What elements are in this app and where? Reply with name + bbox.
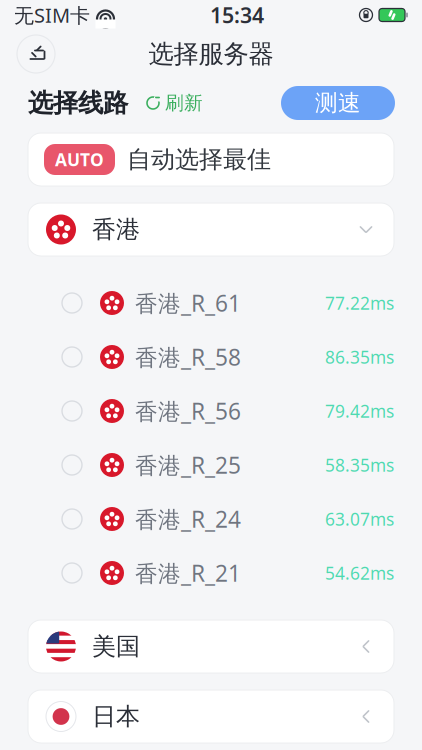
- staticText: 香港: [92, 215, 140, 244]
- button[interactable]: AUTO: [28, 133, 394, 186]
- staticText: 日本: [92, 702, 140, 731]
- button[interactable]: 香港: [28, 203, 394, 256]
- button[interactable]: 香港_R_56: [0, 384, 422, 438]
- staticText: 香港_R_61: [135, 288, 241, 318]
- staticText: 测速: [315, 89, 361, 117]
- button[interactable]: 香港_R_24: [0, 492, 422, 546]
- button[interactable]: 日本: [28, 690, 394, 743]
- button[interactable]: 香港_R_58: [0, 330, 422, 384]
- staticText: 77.22ms: [325, 291, 394, 314]
- button[interactable]: 美国: [28, 620, 394, 673]
- staticText: 选择线路: [28, 87, 128, 118]
- staticText: 54.62ms: [325, 561, 394, 584]
- button[interactable]: 刷新: [140, 85, 209, 120]
- staticText: 58.35ms: [325, 453, 394, 476]
- staticText: 15:34: [210, 1, 264, 29]
- button[interactable]: 香港_R_61: [0, 276, 422, 330]
- staticText: 无SIM卡: [14, 2, 90, 28]
- staticText: 香港_R_58: [135, 342, 241, 372]
- button[interactable]: 返回: [14, 32, 58, 76]
- staticText: AUTO: [55, 148, 104, 171]
- staticText: 香港_R_56: [135, 396, 241, 426]
- button[interactable]: 香港_R_25: [0, 438, 422, 492]
- staticText: 香港_R_24: [135, 504, 241, 534]
- staticText: 香港_R_21: [135, 558, 241, 588]
- staticText: 79.42ms: [325, 399, 394, 422]
- staticText: 86.35ms: [325, 345, 394, 368]
- staticText: 选择服务器: [148, 38, 273, 69]
- button[interactable]: 测速: [281, 86, 395, 120]
- staticText: 63.07ms: [325, 507, 394, 530]
- staticText: 香港_R_25: [135, 450, 241, 480]
- staticText: 刷新: [165, 91, 203, 114]
- staticText: 美国: [92, 632, 140, 661]
- button[interactable]: 香港_R_21: [0, 546, 422, 600]
- staticText: 自动选择最佳: [127, 145, 271, 174]
